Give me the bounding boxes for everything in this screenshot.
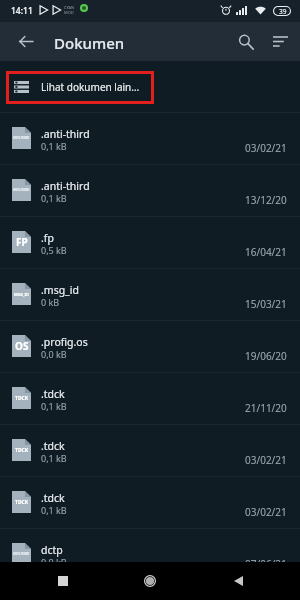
staticText: 14:11 — [11, 5, 33, 17]
staticText: 0,1 kB — [41, 192, 67, 204]
staticText: 0,1 kB — [41, 504, 67, 516]
button[interactable]: FP — [0, 217, 300, 268]
staticText: 21/11/20 — [245, 401, 287, 415]
staticText: 0,0 kB — [41, 556, 67, 568]
staticText: 16/04/21 — [245, 245, 287, 259]
button[interactable]: Sort — [260, 22, 300, 61]
staticText: .anti-third — [41, 179, 90, 193]
staticText: dctp — [41, 543, 63, 557]
staticText: 03/02/21 — [245, 505, 287, 519]
button[interactable]: Back — [213, 562, 263, 600]
staticText: 39 — [279, 7, 287, 16]
button[interactable]: TDCK — [0, 477, 300, 528]
button[interactable]: Home — [125, 562, 175, 600]
staticText: .fp — [41, 231, 54, 245]
staticText: 0,1 kB — [41, 140, 67, 152]
staticText: 03/02/21 — [245, 141, 287, 155]
staticText: .anti-third — [41, 127, 90, 141]
staticText: ANTI-THIRD — [13, 188, 30, 192]
staticText: 0 kB — [41, 296, 60, 308]
button[interactable]: TDCK — [0, 373, 300, 424]
staticText: 15/03/21 — [245, 297, 287, 311]
button[interactable]: ANTI-THIRD — [0, 165, 300, 216]
staticText: 19/06/20 — [245, 349, 287, 363]
staticText: ANTI-THIRD — [13, 552, 30, 556]
button[interactable]: MSG_ID — [0, 269, 300, 320]
button[interactable]: Recents — [38, 562, 88, 600]
staticText: .tdck — [41, 387, 65, 401]
staticText: .msg_id — [41, 283, 79, 297]
button[interactable]: ANTI-THIRD — [0, 529, 300, 580]
button[interactable]: Back — [6, 22, 46, 61]
button[interactable]: Lihat dokumen lain... — [0, 61, 300, 112]
staticText: TDCK — [15, 499, 29, 506]
staticText: 0,0 kB — [41, 348, 67, 360]
staticText: .tdck — [41, 439, 65, 453]
staticText: MSG_ID — [14, 292, 29, 297]
staticText: 0,5 kB — [41, 244, 67, 256]
staticText: OS — [15, 339, 29, 353]
staticText: Lihat dokumen lain... — [41, 80, 140, 94]
button[interactable]: Search — [226, 22, 266, 61]
staticText: 07/06/21 — [245, 557, 287, 571]
staticText: 03/02/21 — [245, 453, 287, 467]
staticText: 0,1 kB — [41, 400, 67, 412]
button[interactable]: OS — [0, 321, 300, 372]
staticText: TDCK — [15, 447, 29, 454]
staticText: .tdck — [41, 491, 65, 505]
button[interactable]: ANTI-THIRD — [0, 113, 300, 164]
staticText: CYAN — [64, 5, 75, 10]
button[interactable]: TDCK — [0, 425, 300, 476]
staticText: 0,1 kB — [41, 452, 67, 464]
staticText: .profig.os — [41, 335, 88, 349]
staticText: FP — [16, 235, 28, 249]
staticText: TDCK — [15, 395, 29, 402]
staticText: MOD — [64, 10, 74, 15]
staticText: Dokumen — [54, 33, 125, 53]
staticText: ANTI-THIRD — [13, 136, 30, 140]
staticText: 13/12/20 — [245, 193, 287, 207]
